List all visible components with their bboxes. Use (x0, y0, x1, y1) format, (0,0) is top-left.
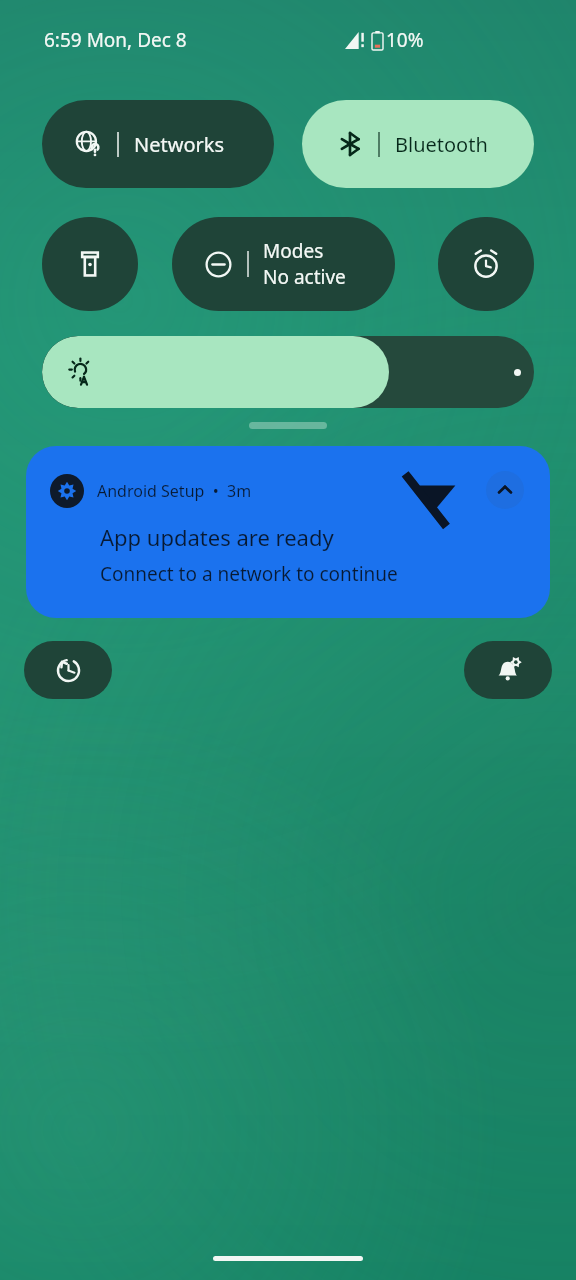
staticText: Android Setup • 3m (97, 480, 252, 502)
staticText: Bluetooth (395, 131, 488, 158)
button[interactable]: Flashlight (42, 217, 138, 311)
button[interactable]: Modes (172, 217, 395, 311)
button[interactable]: Expand quick settings (249, 422, 327, 429)
button[interactable]: Brightness (42, 336, 534, 408)
button[interactable]: Android Setup • 3m (26, 446, 550, 618)
button[interactable]: Bluetooth (302, 100, 534, 188)
button[interactable]: Collapse notification (486, 471, 524, 509)
staticText: 10% (386, 27, 424, 53)
staticText: 6:59 Mon, Dec 8 (44, 27, 187, 53)
staticText: App updates are ready (100, 522, 334, 552)
staticText: Networks (134, 131, 225, 158)
staticText: Connect to a network to continue (100, 561, 398, 587)
button[interactable]: Networks (42, 100, 274, 188)
button[interactable]: Notification history (24, 641, 112, 699)
staticText: Modes (263, 238, 324, 264)
staticText: No active (263, 264, 346, 290)
button[interactable]: Alarm (438, 217, 534, 311)
button[interactable]: Notification settings (464, 641, 552, 699)
